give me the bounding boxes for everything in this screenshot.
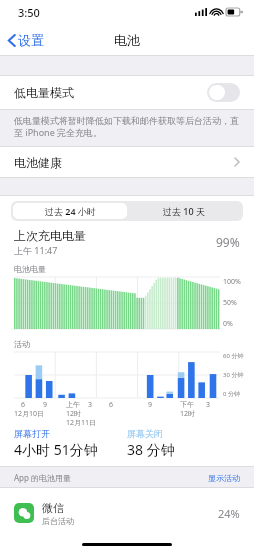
staticText: 3 [206, 400, 211, 410]
staticText: 100% [223, 277, 241, 287]
staticText: 过去 10 天 [163, 205, 205, 217]
staticText: 电池电量 [14, 264, 46, 274]
staticText: 38 分钟 [127, 440, 175, 459]
button[interactable]: 微信 [0, 488, 254, 538]
staticText: 0 分钟 [223, 390, 240, 398]
button[interactable]: 过去 10 天 [127, 203, 241, 219]
staticText: 30 分钟 [223, 371, 244, 379]
staticText: 9 [43, 400, 48, 410]
button[interactable]: 低电量模式开关 [207, 83, 240, 102]
staticText: 3 [88, 400, 93, 410]
staticText: 屏幕打开 [14, 428, 50, 439]
staticText: 低电量模式将暂时降低如下载和邮件获取等后台活动，直至 iPhone 完全充电。 [14, 115, 240, 139]
staticText: 6 [109, 400, 114, 410]
button[interactable]: 电池健康 [0, 147, 254, 177]
staticText: 50% [223, 298, 237, 308]
staticText: 24% [218, 506, 240, 521]
staticText: 上午 [66, 400, 80, 409]
staticText: 电池健康 [14, 155, 62, 170]
staticText: 显示活动 [208, 473, 240, 483]
staticText: 设置 [18, 32, 44, 48]
staticText: 9 [148, 400, 153, 410]
staticText: 60 分钟 [223, 352, 244, 360]
staticText: 过去 24 小时 [45, 205, 96, 217]
staticText: 上午 11:47 [14, 244, 58, 256]
staticText: 0% [223, 319, 233, 329]
button[interactable]: 低电量模式 [0, 76, 254, 109]
staticText: 99% [216, 234, 240, 250]
staticText: 3:50 [18, 5, 40, 20]
button[interactable]: 过去 24 小时 [13, 203, 127, 219]
staticText: 12月11日 [66, 418, 97, 426]
staticText: 低电量模式 [14, 85, 74, 100]
staticText: 微信 [42, 501, 64, 515]
staticText: 屏幕关闭 [127, 428, 163, 439]
staticText: 下午 [180, 400, 194, 409]
staticText: 4小时 51分钟 [14, 440, 98, 459]
staticText: 12月10日 [14, 409, 45, 419]
staticText: 后台活动 [42, 516, 74, 526]
staticText: App 的电池用量 [14, 472, 72, 483]
staticText: 活动 [14, 339, 30, 349]
staticText: 12时 [180, 409, 196, 419]
staticText: 电池 [114, 32, 140, 48]
button[interactable]: 设置 [0, 28, 52, 52]
staticText: 12时 [66, 409, 82, 419]
staticText: 上次充电电量 [14, 228, 86, 243]
staticText: 6 [21, 400, 26, 410]
